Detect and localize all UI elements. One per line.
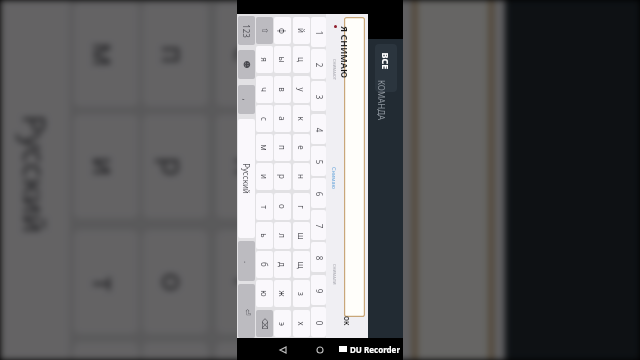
button[interactable]: е xyxy=(216,3,281,107)
button[interactable]: к xyxy=(293,105,310,132)
button[interactable]: ь xyxy=(256,222,273,249)
button[interactable]: д xyxy=(274,251,291,278)
button[interactable]: Back xyxy=(279,346,287,354)
button[interactable] xyxy=(375,44,397,92)
button[interactable]: ь xyxy=(73,342,139,360)
button[interactable]: Русский xyxy=(238,119,255,238)
button[interactable]: б xyxy=(256,251,273,278)
staticText: т xyxy=(85,276,127,292)
button[interactable]: п xyxy=(143,3,208,107)
button[interactable] xyxy=(344,17,365,317)
button[interactable]: с xyxy=(256,105,273,132)
staticText: ь xyxy=(259,233,270,238)
staticText: ц xyxy=(296,57,307,62)
button[interactable]: х xyxy=(293,310,310,337)
button[interactable]: ю xyxy=(256,280,273,307)
button[interactable]: п xyxy=(274,134,291,161)
staticText: , xyxy=(241,98,252,101)
button[interactable]: г xyxy=(293,193,310,220)
staticText: 3 xyxy=(313,94,324,99)
staticText: з xyxy=(296,292,307,296)
button[interactable]: е xyxy=(293,134,310,161)
staticText: е xyxy=(296,145,307,150)
button[interactable]: у xyxy=(293,76,310,103)
button[interactable]: ф xyxy=(274,17,291,44)
button[interactable]: г xyxy=(216,230,281,334)
button[interactable]: 6 xyxy=(311,178,326,208)
button[interactable]: и xyxy=(256,163,273,190)
staticText: щ xyxy=(296,261,307,269)
button[interactable]: н xyxy=(293,163,310,190)
button[interactable]: ⇧ xyxy=(256,17,273,44)
button[interactable]: ⏎ xyxy=(238,284,255,338)
button[interactable]: 5 xyxy=(311,146,326,176)
button[interactable]: 3 xyxy=(311,81,326,111)
button[interactable]: л xyxy=(274,222,291,249)
button[interactable]: я xyxy=(256,46,273,73)
button[interactable]: т xyxy=(73,230,139,334)
staticText: в xyxy=(277,87,288,92)
button[interactable]: 9 xyxy=(311,275,326,305)
button[interactable]: з xyxy=(293,280,310,307)
button[interactable]: Русский xyxy=(4,0,69,360)
staticText: Русский xyxy=(241,163,252,194)
button[interactable]: 6 xyxy=(285,172,343,288)
button[interactable]: 4 xyxy=(311,114,326,144)
button[interactable]: л xyxy=(143,342,208,360)
staticText: ⌫ xyxy=(260,318,269,330)
button[interactable]: 8 xyxy=(311,242,326,272)
button[interactable]: ⌫ xyxy=(256,310,273,337)
button[interactable]: , xyxy=(238,85,255,114)
button[interactable]: э xyxy=(274,310,291,337)
staticText: п xyxy=(154,45,197,64)
button[interactable]: н xyxy=(216,114,281,218)
button[interactable]: й xyxy=(293,17,310,44)
staticText: с xyxy=(259,117,270,121)
staticText: б xyxy=(259,262,270,267)
button[interactable]: т xyxy=(256,193,273,220)
button[interactable]: ч xyxy=(256,76,273,103)
staticText: СНИМАЮТ xyxy=(332,59,337,80)
button[interactable]: щ xyxy=(293,251,310,278)
button[interactable]: Home xyxy=(316,346,324,354)
button[interactable]: в xyxy=(274,76,291,103)
button[interactable]: а xyxy=(274,105,291,132)
button[interactable]: ш xyxy=(293,222,310,249)
button[interactable]: 1 xyxy=(311,17,326,47)
button[interactable]: и xyxy=(73,114,139,218)
button[interactable]: м xyxy=(256,134,273,161)
button[interactable]: 7 xyxy=(285,295,343,360)
button[interactable]: ы xyxy=(274,46,291,73)
staticText: ж xyxy=(277,290,288,297)
button[interactable]: р xyxy=(274,163,291,190)
staticText: о xyxy=(154,272,197,292)
button[interactable]: о xyxy=(143,230,208,334)
button[interactable]: 2 xyxy=(311,49,326,79)
staticText: ы xyxy=(277,56,288,63)
button[interactable]: р xyxy=(143,114,208,218)
staticText: р xyxy=(277,174,288,179)
button[interactable]: 123 xyxy=(238,16,255,45)
button[interactable] xyxy=(412,0,493,360)
staticText: 7 xyxy=(313,223,324,228)
button[interactable]: м xyxy=(73,3,139,107)
staticText: а xyxy=(277,116,288,121)
button[interactable]: ш xyxy=(216,342,281,360)
staticText: 5 xyxy=(313,159,324,164)
staticText: 1 xyxy=(313,30,324,35)
button[interactable]: ☻ xyxy=(238,50,255,79)
staticText: 6 xyxy=(295,224,337,243)
button[interactable]: ц xyxy=(293,46,310,73)
button[interactable]: 0 xyxy=(311,307,326,337)
button[interactable]: 7 xyxy=(311,210,326,240)
button[interactable]: 5 xyxy=(285,49,343,164)
staticText: й xyxy=(296,28,307,33)
button[interactable]: 4 xyxy=(285,0,343,41)
staticText: 2 xyxy=(313,62,324,67)
button[interactable]: о xyxy=(274,193,291,220)
staticText: ⇧ xyxy=(260,27,269,34)
button[interactable]: ж xyxy=(274,280,291,307)
staticText: м xyxy=(85,41,127,68)
staticText: т xyxy=(259,205,270,209)
